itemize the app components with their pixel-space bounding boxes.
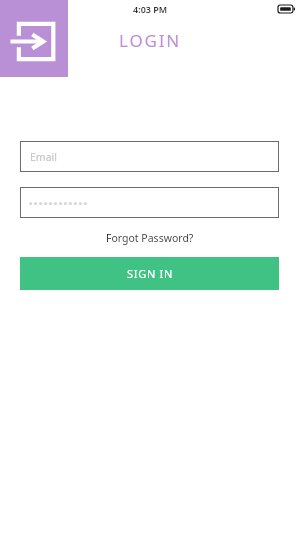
staticText: LOGIN — [119, 29, 181, 52]
button[interactable]: SIGN IN — [20, 257, 279, 290]
staticText: Email — [30, 150, 57, 164]
button[interactable]: Email — [20, 141, 279, 172]
staticText: SIGN IN — [127, 266, 173, 281]
staticText: 4:03 PM — [133, 3, 168, 15]
staticText: Forgot Password? — [106, 231, 194, 245]
button[interactable] — [20, 187, 279, 218]
button[interactable]: Login — [0, 0, 68, 77]
button[interactable]: Forgot Password? — [100, 229, 200, 247]
